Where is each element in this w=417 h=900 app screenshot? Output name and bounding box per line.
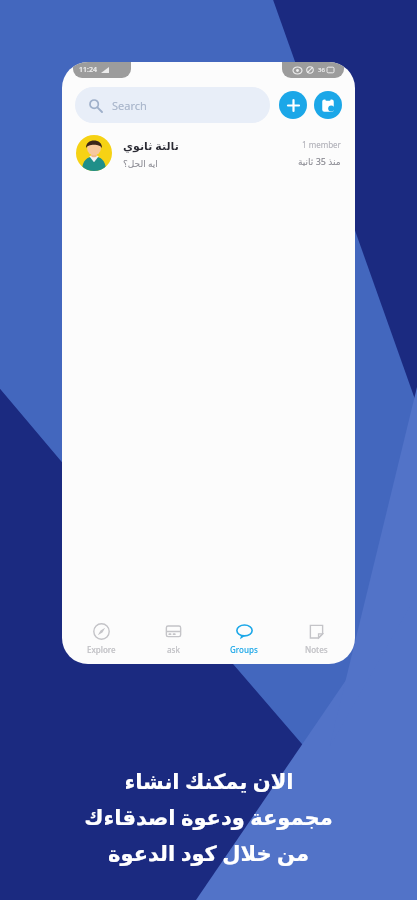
button[interactable]: تالتة ثانوي: [62, 127, 355, 179]
staticText: من خلال كود الدعوة: [108, 839, 309, 868]
staticText: منذ 35 ثانية: [298, 155, 341, 167]
button[interactable]: Create group: [279, 91, 307, 119]
staticText: 11:24: [79, 65, 97, 75]
button[interactable]: Groups: [212, 619, 276, 659]
staticText: Groups: [230, 644, 258, 655]
button[interactable]: ask: [141, 619, 205, 659]
button[interactable]: Search: [75, 87, 270, 123]
staticText: Explore: [87, 644, 116, 655]
staticText: 1 member: [302, 139, 341, 150]
staticText: 36: [318, 66, 325, 74]
button[interactable]: Notes: [284, 619, 348, 659]
staticText: Notes: [305, 644, 328, 655]
button[interactable]: Explore: [69, 619, 133, 659]
staticText: ايه الحل؟: [123, 157, 158, 169]
staticText: تالتة ثانوي: [123, 138, 179, 153]
staticText: الان يمكنك انشاء: [124, 767, 294, 796]
staticText: مجموعة ودعوة اصدقاءك: [84, 803, 333, 832]
staticText: ask: [167, 644, 180, 655]
staticText: Search: [112, 98, 147, 113]
button[interactable]: Join group with code: [314, 91, 342, 119]
